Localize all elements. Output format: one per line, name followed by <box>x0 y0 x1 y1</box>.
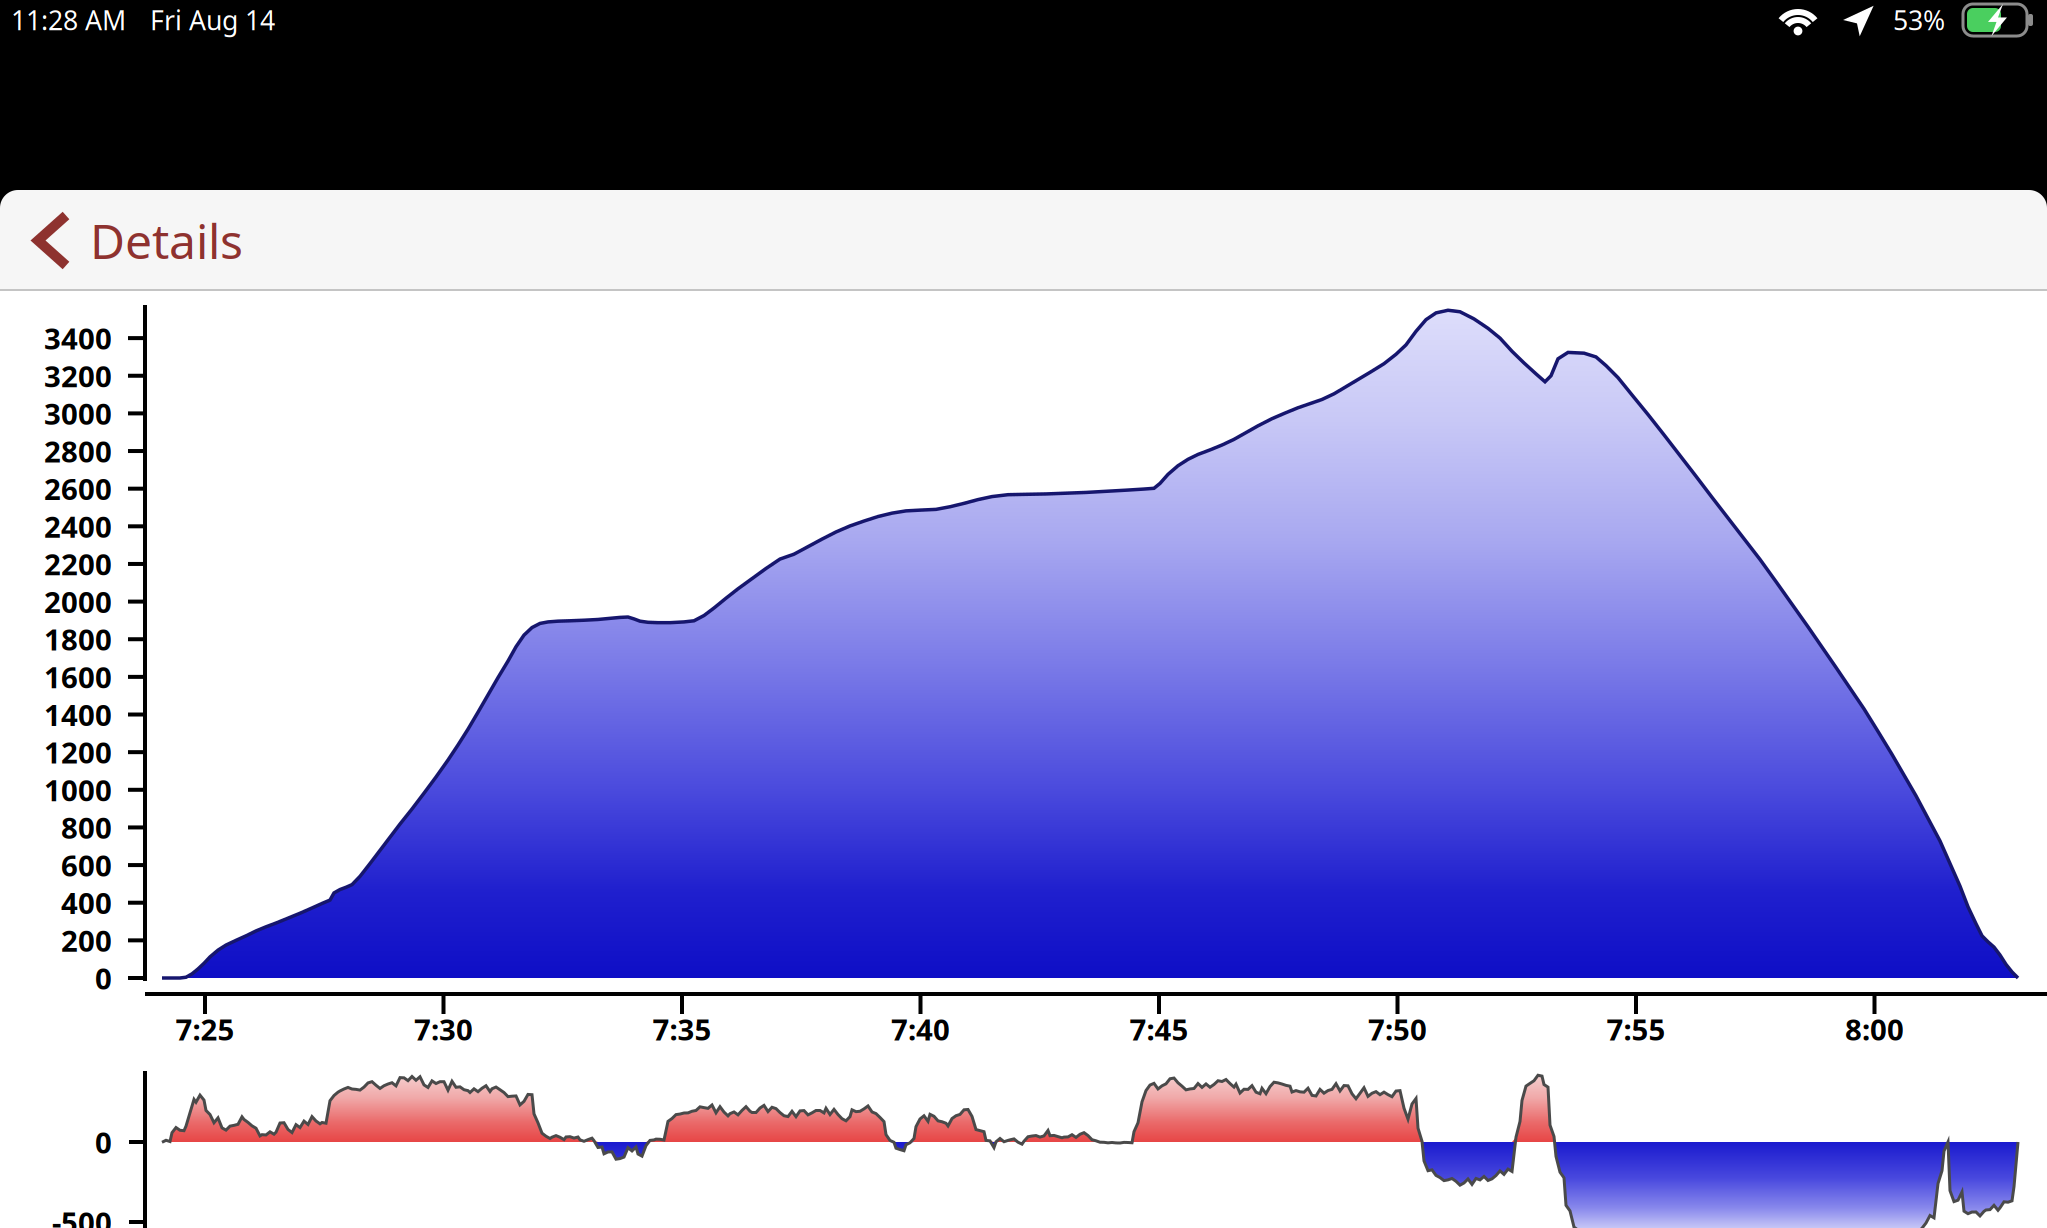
staticText: 2000 <box>44 582 112 621</box>
staticText: 400 <box>61 883 112 922</box>
staticText: 0 <box>95 1122 112 1161</box>
staticText: 1200 <box>44 733 112 772</box>
staticText: 7:25 <box>175 1009 234 1048</box>
staticText: 7:50 <box>1368 1009 1427 1048</box>
staticText: 8:00 <box>1845 1009 1904 1048</box>
staticText: 53% <box>1893 2 1945 38</box>
staticText: 1800 <box>44 620 112 659</box>
staticText: 800 <box>61 808 112 847</box>
staticText: 7:35 <box>652 1009 711 1048</box>
staticText: Fri Aug 14 <box>150 2 275 38</box>
staticText: 2200 <box>44 544 112 583</box>
staticText: 7:40 <box>891 1009 950 1048</box>
staticText: 2600 <box>44 469 112 508</box>
staticText: 600 <box>61 846 112 885</box>
staticText: -500 <box>52 1202 112 1228</box>
staticText: 0 <box>95 958 112 997</box>
staticText: 7:30 <box>414 1009 473 1048</box>
staticText: 11:28 AM <box>11 2 126 38</box>
staticText: 3200 <box>44 356 112 395</box>
staticText: Details <box>90 209 243 272</box>
staticText: 1400 <box>44 695 112 734</box>
button[interactable]: Details <box>0 190 263 291</box>
staticText: 1000 <box>44 770 112 809</box>
staticText: 3400 <box>44 319 112 358</box>
staticText: 7:45 <box>1129 1009 1188 1048</box>
staticText: 2400 <box>44 507 112 546</box>
staticText: 3000 <box>44 394 112 433</box>
staticText: 7:55 <box>1606 1009 1665 1048</box>
staticText: 1600 <box>44 657 112 696</box>
staticText: 200 <box>61 921 112 960</box>
staticText: 2800 <box>44 432 112 471</box>
